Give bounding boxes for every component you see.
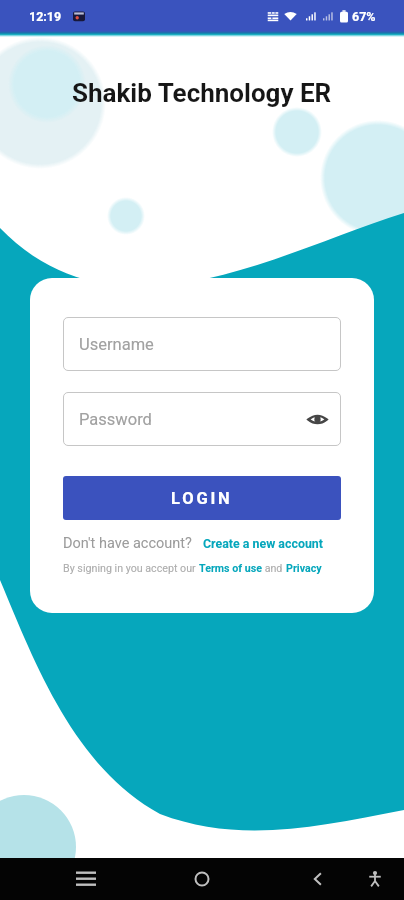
staticText: LOGIN (171, 489, 233, 508)
button[interactable]: Show password (302, 404, 332, 434)
button[interactable]: Terms of use (199, 562, 262, 575)
button[interactable]: Privacy (286, 562, 322, 575)
button[interactable]: Password (63, 392, 341, 446)
button[interactable]: Create a new account (203, 536, 323, 551)
staticText: Shakib Technology ER (72, 78, 332, 108)
staticText: Password (79, 410, 152, 429)
staticText: and (262, 562, 286, 575)
button[interactable]: LOGIN (63, 476, 341, 520)
staticText: 12:19 (29, 9, 62, 24)
button[interactable]: Accessibility (354, 858, 396, 900)
staticText: Terms of use (199, 562, 262, 575)
button[interactable]: Username (63, 317, 341, 371)
button[interactable]: Back (260, 858, 376, 900)
staticText: Privacy (286, 562, 322, 575)
staticText: Username (79, 335, 154, 354)
staticText: 67% (352, 9, 376, 24)
button[interactable]: Home (144, 858, 260, 900)
button[interactable]: Recent apps (28, 858, 144, 900)
staticText: Don't have account? (63, 535, 192, 552)
staticText: Create a new account (203, 536, 323, 551)
staticText: By signing in you accept our (63, 562, 199, 575)
